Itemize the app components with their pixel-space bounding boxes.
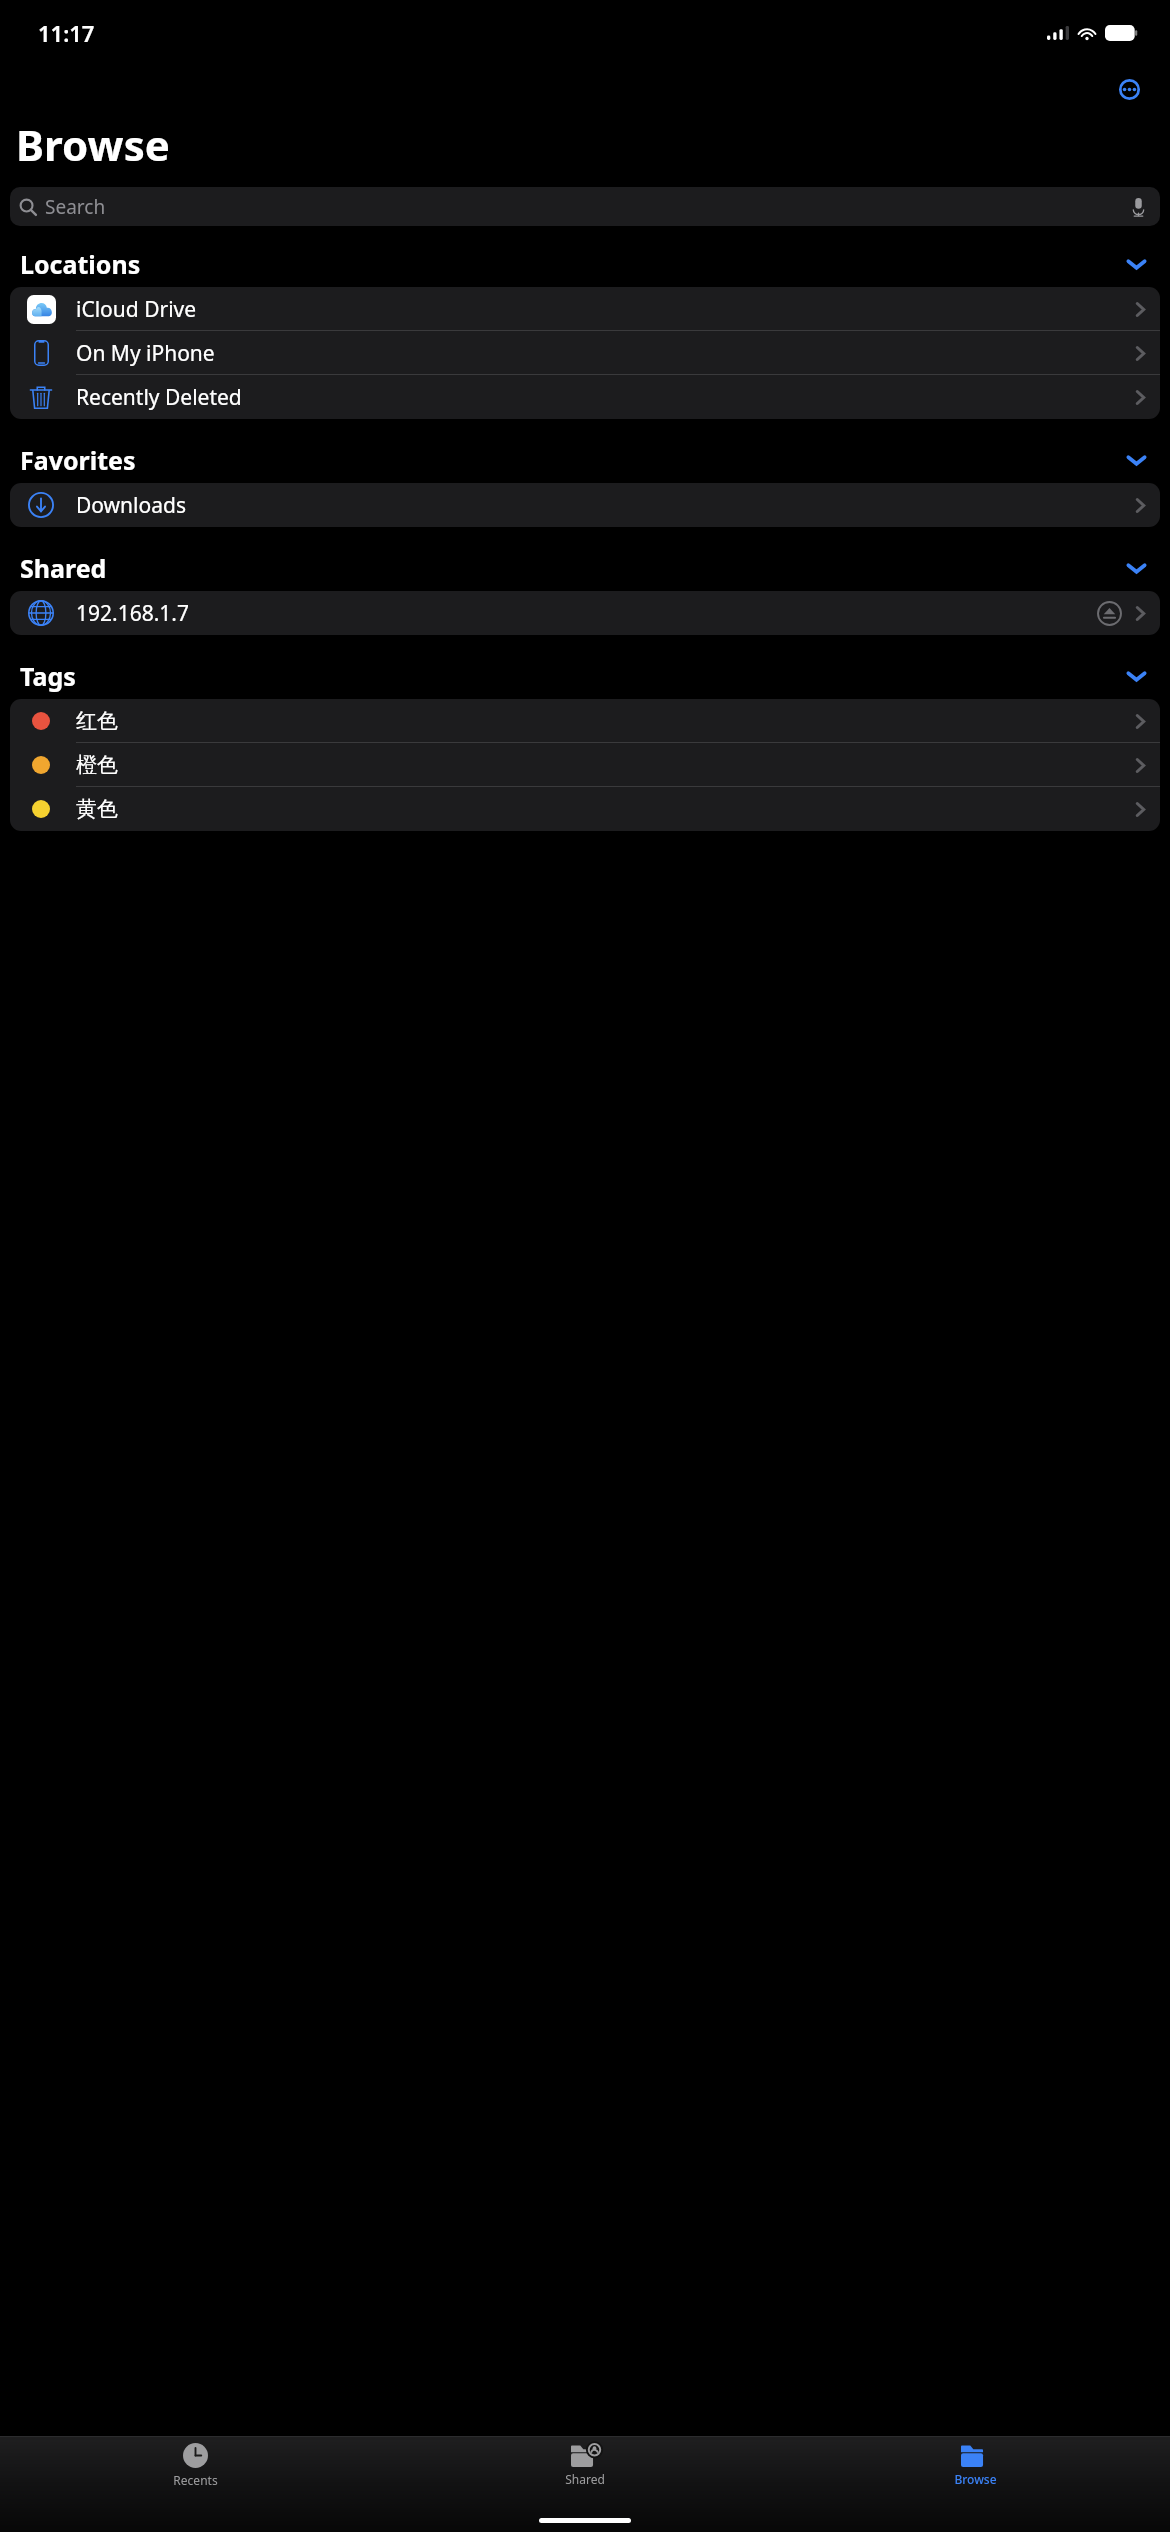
button[interactable]: iCloud Drive bbox=[10, 287, 1160, 331]
button[interactable]: Shared bbox=[390, 2437, 780, 2494]
staticText: iCloud Drive bbox=[76, 295, 197, 324]
button[interactable]: Recents bbox=[0, 2437, 390, 2494]
staticText: Shared bbox=[565, 2471, 605, 2487]
staticText: 橙色 bbox=[76, 752, 118, 778]
button[interactable]: On My iPhone bbox=[10, 331, 1160, 375]
button[interactable]: More options bbox=[1108, 68, 1150, 110]
button[interactable]: Shared bbox=[0, 545, 1170, 591]
button[interactable]: Eject bbox=[1095, 599, 1123, 627]
button[interactable]: Favorites bbox=[0, 437, 1170, 483]
staticText: 黄色 bbox=[76, 796, 118, 822]
button[interactable]: Locations bbox=[0, 241, 1170, 287]
staticText: Browse bbox=[954, 2471, 997, 2487]
button[interactable]: 橙色 bbox=[10, 743, 1160, 787]
button[interactable]: 192.168.1.7 bbox=[10, 591, 1160, 635]
staticText: 红色 bbox=[76, 708, 118, 734]
staticText: Locations bbox=[20, 247, 141, 281]
staticText: 192.168.1.7 bbox=[76, 599, 189, 628]
button[interactable]: 红色 bbox=[10, 699, 1160, 743]
button[interactable]: Search bbox=[10, 187, 1160, 226]
staticText: Search bbox=[45, 194, 106, 220]
staticText: Browse bbox=[16, 116, 170, 173]
staticText: 11:17 bbox=[38, 18, 95, 48]
staticText: Recently Deleted bbox=[76, 383, 242, 412]
staticText: On My iPhone bbox=[76, 339, 215, 368]
button[interactable]: 黄色 bbox=[10, 787, 1160, 831]
button[interactable]: Recently Deleted bbox=[10, 375, 1160, 419]
staticText: Tags bbox=[20, 659, 76, 693]
staticText: Favorites bbox=[20, 443, 136, 477]
button[interactable]: Browse bbox=[780, 2437, 1170, 2494]
button[interactable]: Downloads bbox=[10, 483, 1160, 527]
staticText: Downloads bbox=[76, 491, 186, 520]
staticText: Shared bbox=[20, 551, 107, 585]
button[interactable]: Tags bbox=[0, 653, 1170, 699]
staticText: Recents bbox=[173, 2472, 218, 2488]
button[interactable]: Voice search bbox=[1125, 194, 1151, 220]
